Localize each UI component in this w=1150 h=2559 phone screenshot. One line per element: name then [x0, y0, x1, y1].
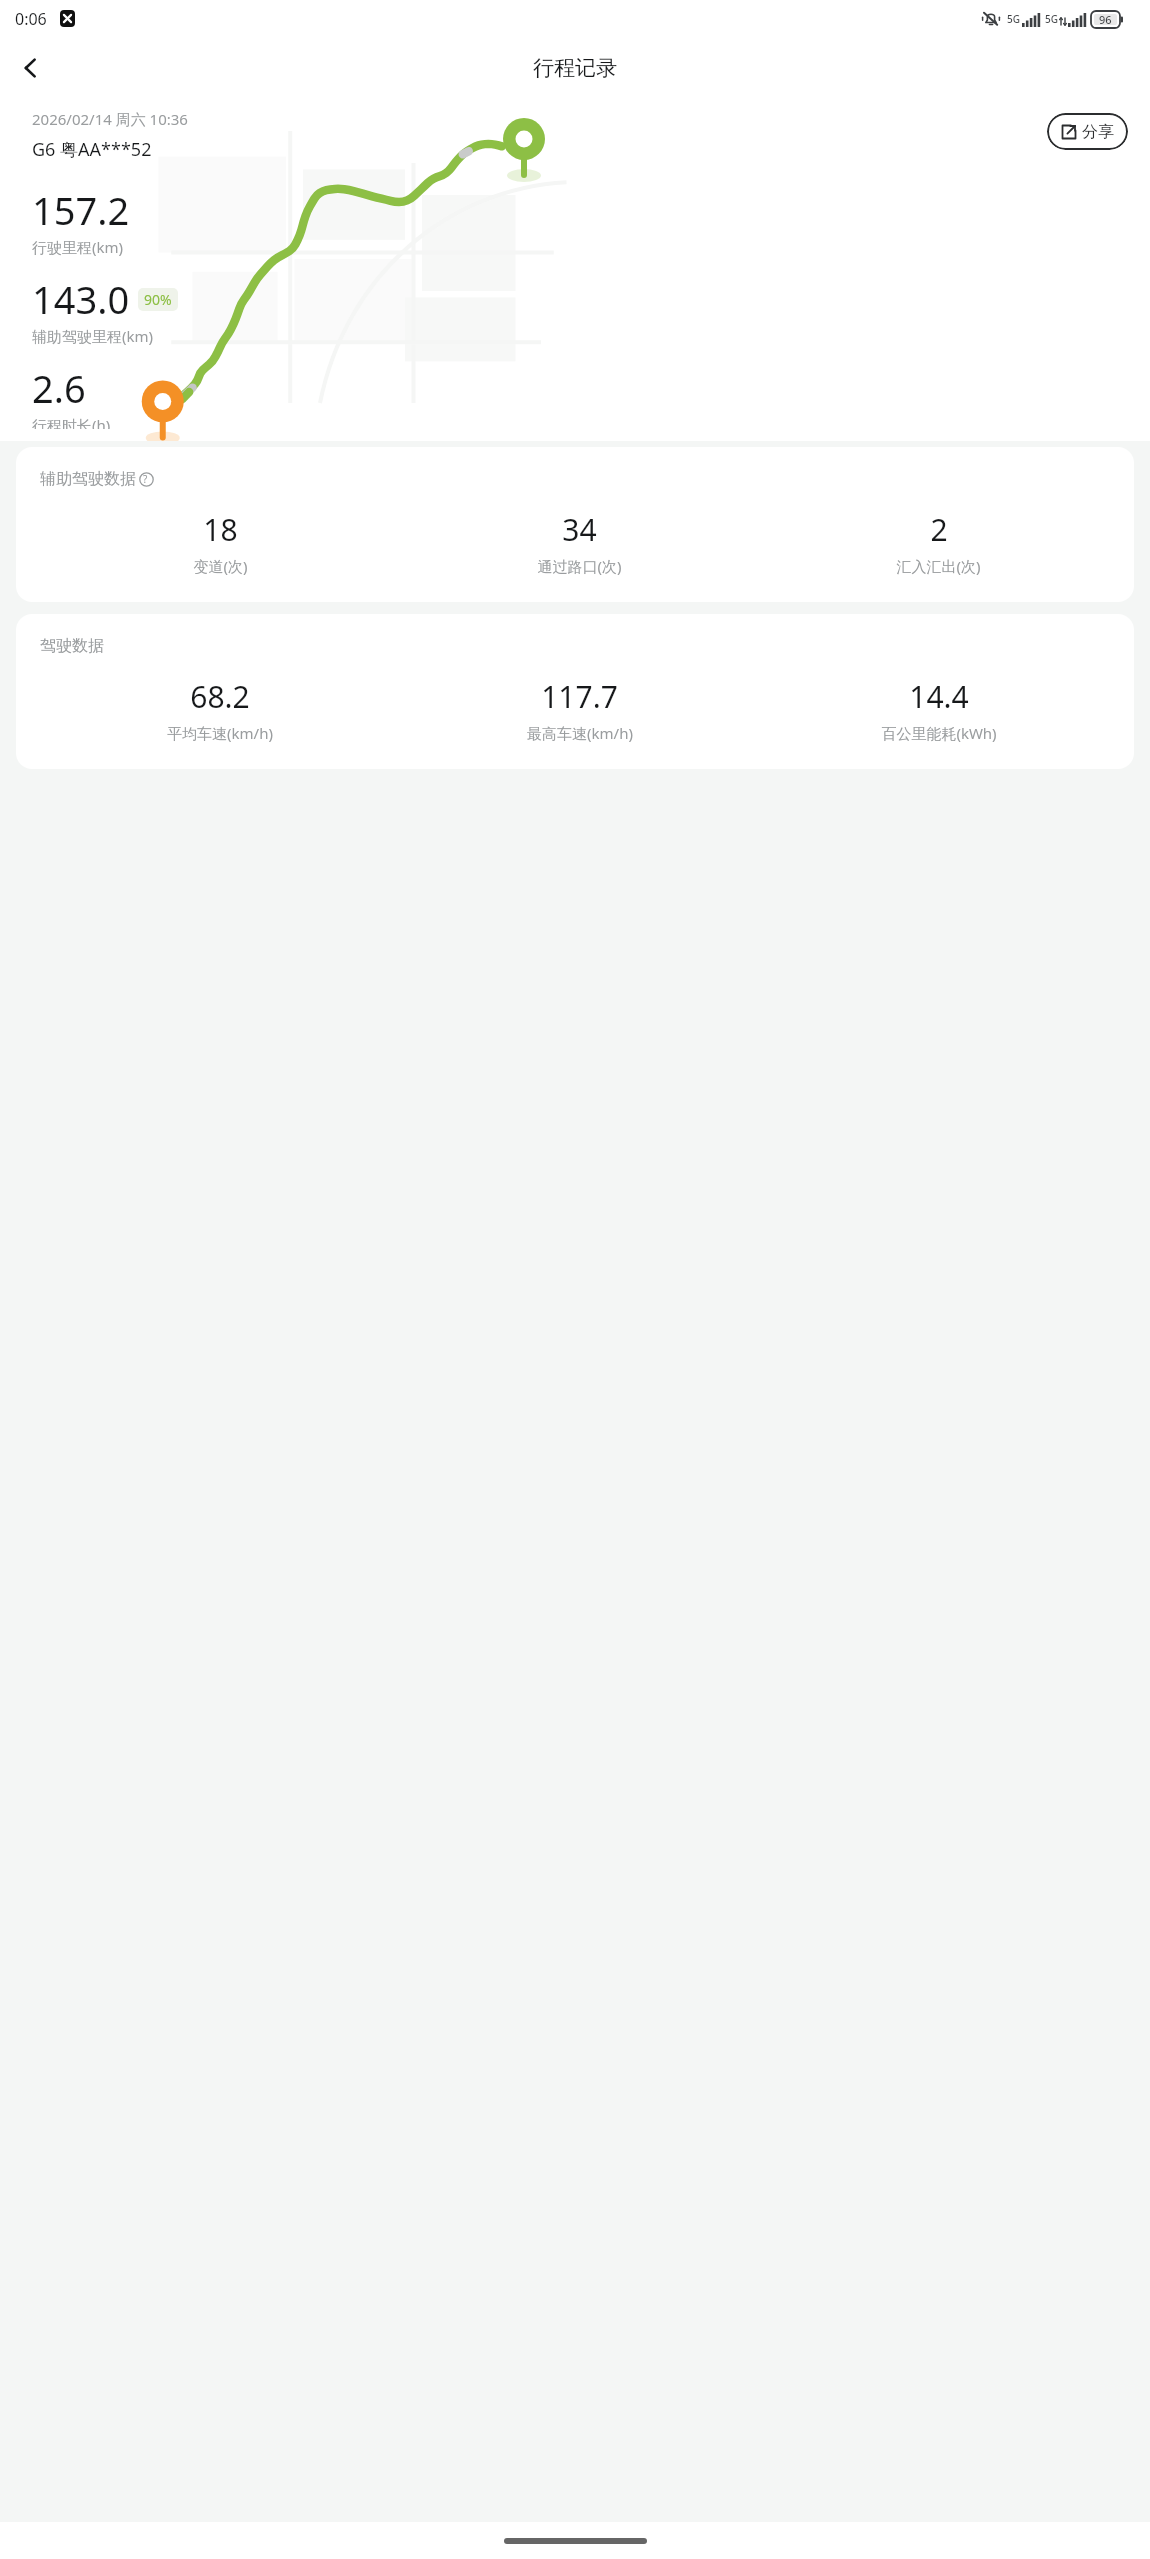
staticText: 行驶里程(km) [32, 237, 124, 257]
staticText: 14.4 [909, 676, 969, 717]
staticText: 5G [1007, 12, 1020, 26]
staticText: 157.2 [32, 184, 130, 236]
staticText: 34 [562, 509, 597, 550]
staticText: 18 [203, 509, 238, 550]
staticText: 90% [144, 290, 172, 309]
staticText: 辅助驾驶数据 [40, 469, 136, 489]
staticText: 分享 [1082, 122, 1114, 142]
staticText: 143.0 [32, 273, 130, 325]
button[interactable]: Back [8, 44, 56, 92]
staticText: 96 [1099, 12, 1112, 27]
staticText: 0:06 [15, 8, 47, 30]
staticText: 最高车速(km/h) [527, 723, 633, 743]
staticText: 117.7 [541, 676, 618, 717]
staticText: ? [143, 472, 148, 486]
button[interactable]: 辅助驾驶数据 [16, 447, 1134, 602]
staticText: 百公里能耗(kWh) [881, 723, 997, 743]
staticText: 2026/02/14 周六 10:36 [32, 109, 188, 129]
staticText: 汇入汇出(次) [896, 556, 981, 576]
staticText: 5G [1045, 12, 1058, 26]
staticText: 行程记录 [533, 55, 617, 81]
button[interactable]: 驾驶数据 [16, 614, 1134, 769]
staticText: 驾驶数据 [40, 636, 104, 656]
staticText: 行程时长(h) [32, 415, 111, 429]
staticText: 2.6 [32, 362, 86, 414]
button[interactable]: 分享 [1047, 113, 1128, 150]
staticText: 辅助驾驶里程(km) [32, 326, 154, 346]
staticText: 68.2 [190, 676, 250, 717]
staticText: 2 [930, 509, 948, 550]
staticText: 变道(次) [193, 556, 248, 576]
staticText: G6 粤AA***52 [32, 137, 152, 162]
staticText: 平均车速(km/h) [167, 723, 273, 743]
staticText: 通过路口(次) [537, 556, 622, 576]
